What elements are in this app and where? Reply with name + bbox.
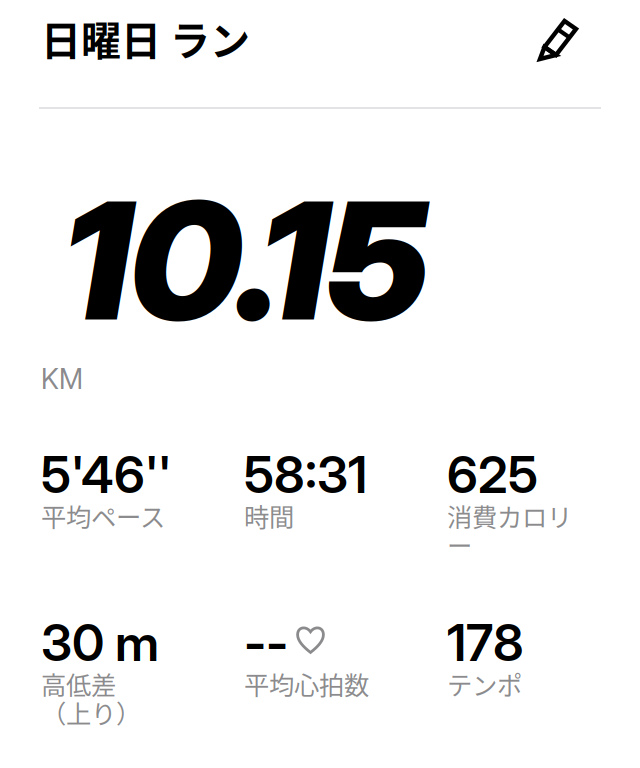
staticText: テンポ	[447, 665, 522, 702]
staticText: 5'46''	[41, 444, 171, 505]
staticText: 30 m	[41, 612, 159, 673]
staticText: --	[244, 612, 288, 673]
staticText: 178	[447, 612, 524, 673]
staticText: 平均ペース	[41, 497, 165, 534]
staticText: 10.15	[63, 162, 428, 359]
staticText: 消費カロリ ー	[447, 497, 572, 563]
button[interactable]: Edit workout	[537, 0, 600, 64]
staticText: 日曜日 ラン	[41, 9, 250, 67]
staticText: KM	[41, 362, 83, 396]
staticText: 58:31	[244, 444, 367, 505]
staticText: 高低差 （上り）	[41, 665, 141, 731]
staticText: 時間	[244, 497, 294, 534]
staticText: 平均心拍数	[244, 665, 369, 702]
staticText: 625	[447, 444, 538, 505]
